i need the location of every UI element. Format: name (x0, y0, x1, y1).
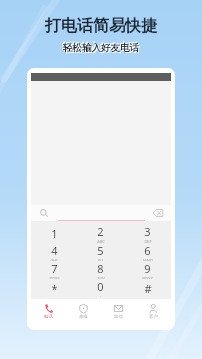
staticText: 5 (97, 243, 104, 258)
button[interactable]: 9 (124, 261, 171, 279)
staticText: MNO (143, 258, 153, 261)
button[interactable]: 1 (31, 224, 77, 243)
button[interactable]: 6 (124, 243, 171, 261)
button[interactable]: 5 (77, 243, 124, 261)
button[interactable]: * (31, 279, 77, 297)
staticText: 轻松输入好友电话 (64, 43, 140, 55)
staticText: PQRS (49, 276, 60, 279)
staticText: 7 (51, 261, 58, 276)
staticText: TUV (97, 276, 105, 279)
staticText: 9 (144, 261, 151, 276)
staticText: + (99, 294, 102, 297)
button[interactable]: # (124, 279, 171, 297)
staticText: ABC (97, 239, 105, 243)
button[interactable]: Backspace (151, 206, 165, 220)
staticText: 打电话简易快捷 (45, 16, 157, 36)
staticText: 0 (97, 279, 104, 294)
staticText: 电话 (44, 314, 53, 320)
button[interactable]: Search (37, 206, 51, 220)
staticText: GHI (50, 258, 58, 261)
button[interactable]: 客户 (136, 299, 171, 325)
staticText: WXYZ (142, 276, 153, 279)
staticText: 轻松输入好友电话 (63, 42, 139, 54)
button[interactable]: 电话 (31, 299, 66, 325)
staticText: 6 (144, 243, 151, 258)
staticText: 8 (97, 261, 104, 276)
staticText: JKL (98, 258, 104, 261)
staticText: 3 (144, 224, 151, 239)
staticText: 轻松输入好友电话 (62, 41, 138, 53)
button[interactable]: 4 (31, 243, 77, 261)
button[interactable]: 3 (124, 224, 171, 243)
button[interactable]: 0 (77, 279, 124, 297)
button[interactable]: 短信 (101, 299, 136, 325)
staticText: 2 (97, 224, 104, 239)
staticText: * (51, 281, 58, 296)
staticText: 4 (51, 243, 58, 258)
staticText: 短信 (114, 314, 123, 320)
staticText: DEF (144, 239, 152, 243)
button[interactable]: 2 (77, 224, 124, 243)
staticText: # (144, 281, 152, 296)
button[interactable]: 来电 (66, 299, 101, 325)
staticText: 1 (51, 226, 58, 241)
staticText: 客户 (149, 314, 158, 320)
button[interactable]: 8 (77, 261, 124, 279)
button[interactable]: 7 (31, 261, 77, 279)
staticText: 来电 (79, 314, 88, 320)
